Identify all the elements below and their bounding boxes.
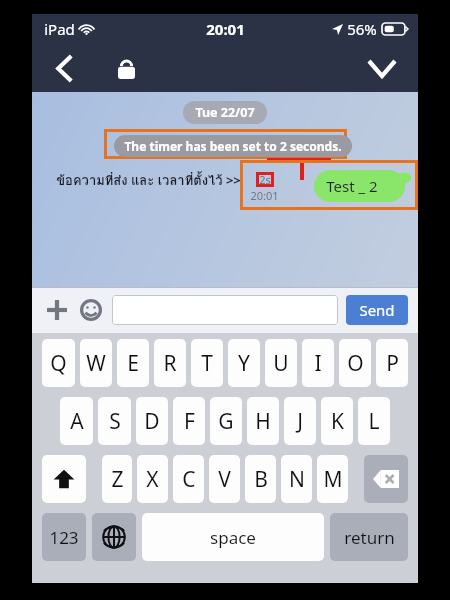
staticText: U: [273, 349, 289, 378]
button[interactable]: T: [191, 339, 223, 387]
button[interactable]: R: [154, 339, 186, 387]
button[interactable]: Emoji: [76, 295, 106, 325]
staticText: W: [86, 349, 106, 378]
button[interactable]: space: [142, 513, 324, 561]
staticText: 123: [49, 526, 79, 549]
button[interactable]: O: [339, 339, 371, 387]
staticText: 20:01: [250, 188, 279, 203]
staticText: T: [201, 349, 213, 378]
staticText: 56%: [347, 19, 377, 39]
button[interactable]: H: [247, 397, 279, 445]
button[interactable]: W: [80, 339, 112, 387]
staticText: O: [347, 349, 364, 378]
button[interactable]: A: [60, 397, 93, 445]
button[interactable]: Locked chat: [110, 52, 142, 84]
staticText: Send: [359, 300, 395, 320]
staticText: ข้อความที่ส่ง และ เวลาที่ตั้งไว้ >>: [56, 170, 241, 191]
staticText: C: [182, 465, 196, 494]
staticText: V: [218, 465, 231, 494]
staticText: The timer has been set to 2 seconds.: [124, 138, 342, 154]
button[interactable]: Z: [102, 455, 132, 503]
button[interactable]: J: [284, 397, 316, 445]
button[interactable]: M: [317, 455, 348, 503]
staticText: Test _ 2: [326, 176, 378, 196]
button[interactable]: B: [245, 455, 276, 503]
staticText: A: [70, 407, 84, 436]
button[interactable]: G: [210, 397, 242, 445]
button[interactable]: I: [302, 339, 334, 387]
staticText: iPad: [44, 19, 75, 39]
button[interactable]: X: [137, 455, 168, 503]
staticText: 20:01: [206, 19, 245, 39]
button[interactable]: Change keyboard language: [92, 513, 136, 561]
button[interactable]: Add attachment: [42, 295, 72, 325]
staticText: H: [255, 407, 271, 436]
button[interactable]: C: [173, 455, 204, 503]
staticText: K: [331, 407, 344, 436]
button[interactable]: Send: [346, 295, 408, 325]
staticText: G: [218, 407, 234, 436]
button[interactable]: V: [209, 455, 240, 503]
button[interactable]: K: [321, 397, 353, 445]
staticText: I: [314, 349, 322, 378]
button[interactable]: Collapse: [364, 50, 400, 86]
button[interactable]: P: [376, 339, 408, 387]
staticText: return: [344, 526, 395, 549]
button[interactable]: N: [281, 455, 312, 503]
staticText: F: [184, 407, 195, 436]
staticText: X: [146, 465, 159, 494]
button[interactable]: L: [358, 397, 390, 445]
button[interactable]: F: [173, 397, 205, 445]
staticText: Y: [238, 349, 250, 378]
staticText: Q: [50, 349, 67, 378]
staticText: N: [289, 465, 305, 494]
staticText: J: [297, 407, 303, 436]
staticText: 2s: [259, 172, 271, 187]
button[interactable]: Shift: [42, 455, 86, 503]
staticText: R: [163, 349, 177, 378]
button[interactable]: D: [136, 397, 168, 445]
button[interactable]: Backspace: [364, 455, 408, 503]
button[interactable]: Q: [42, 339, 75, 387]
button[interactable]: S: [98, 397, 131, 445]
staticText: E: [127, 349, 139, 378]
button[interactable]: [112, 295, 338, 325]
staticText: P: [386, 349, 399, 378]
button[interactable]: return: [330, 513, 408, 561]
staticText: M: [323, 465, 343, 494]
button[interactable]: E: [117, 339, 149, 387]
staticText: S: [109, 407, 121, 436]
staticText: L: [368, 407, 380, 436]
staticText: D: [144, 407, 160, 436]
button[interactable]: 123: [42, 513, 86, 561]
button[interactable]: Y: [228, 339, 260, 387]
staticText: Tue 22/07: [195, 104, 255, 121]
staticText: space: [210, 526, 256, 549]
staticText: B: [254, 465, 268, 494]
button[interactable]: Back: [48, 52, 80, 84]
staticText: Z: [111, 465, 124, 494]
button[interactable]: U: [265, 339, 297, 387]
